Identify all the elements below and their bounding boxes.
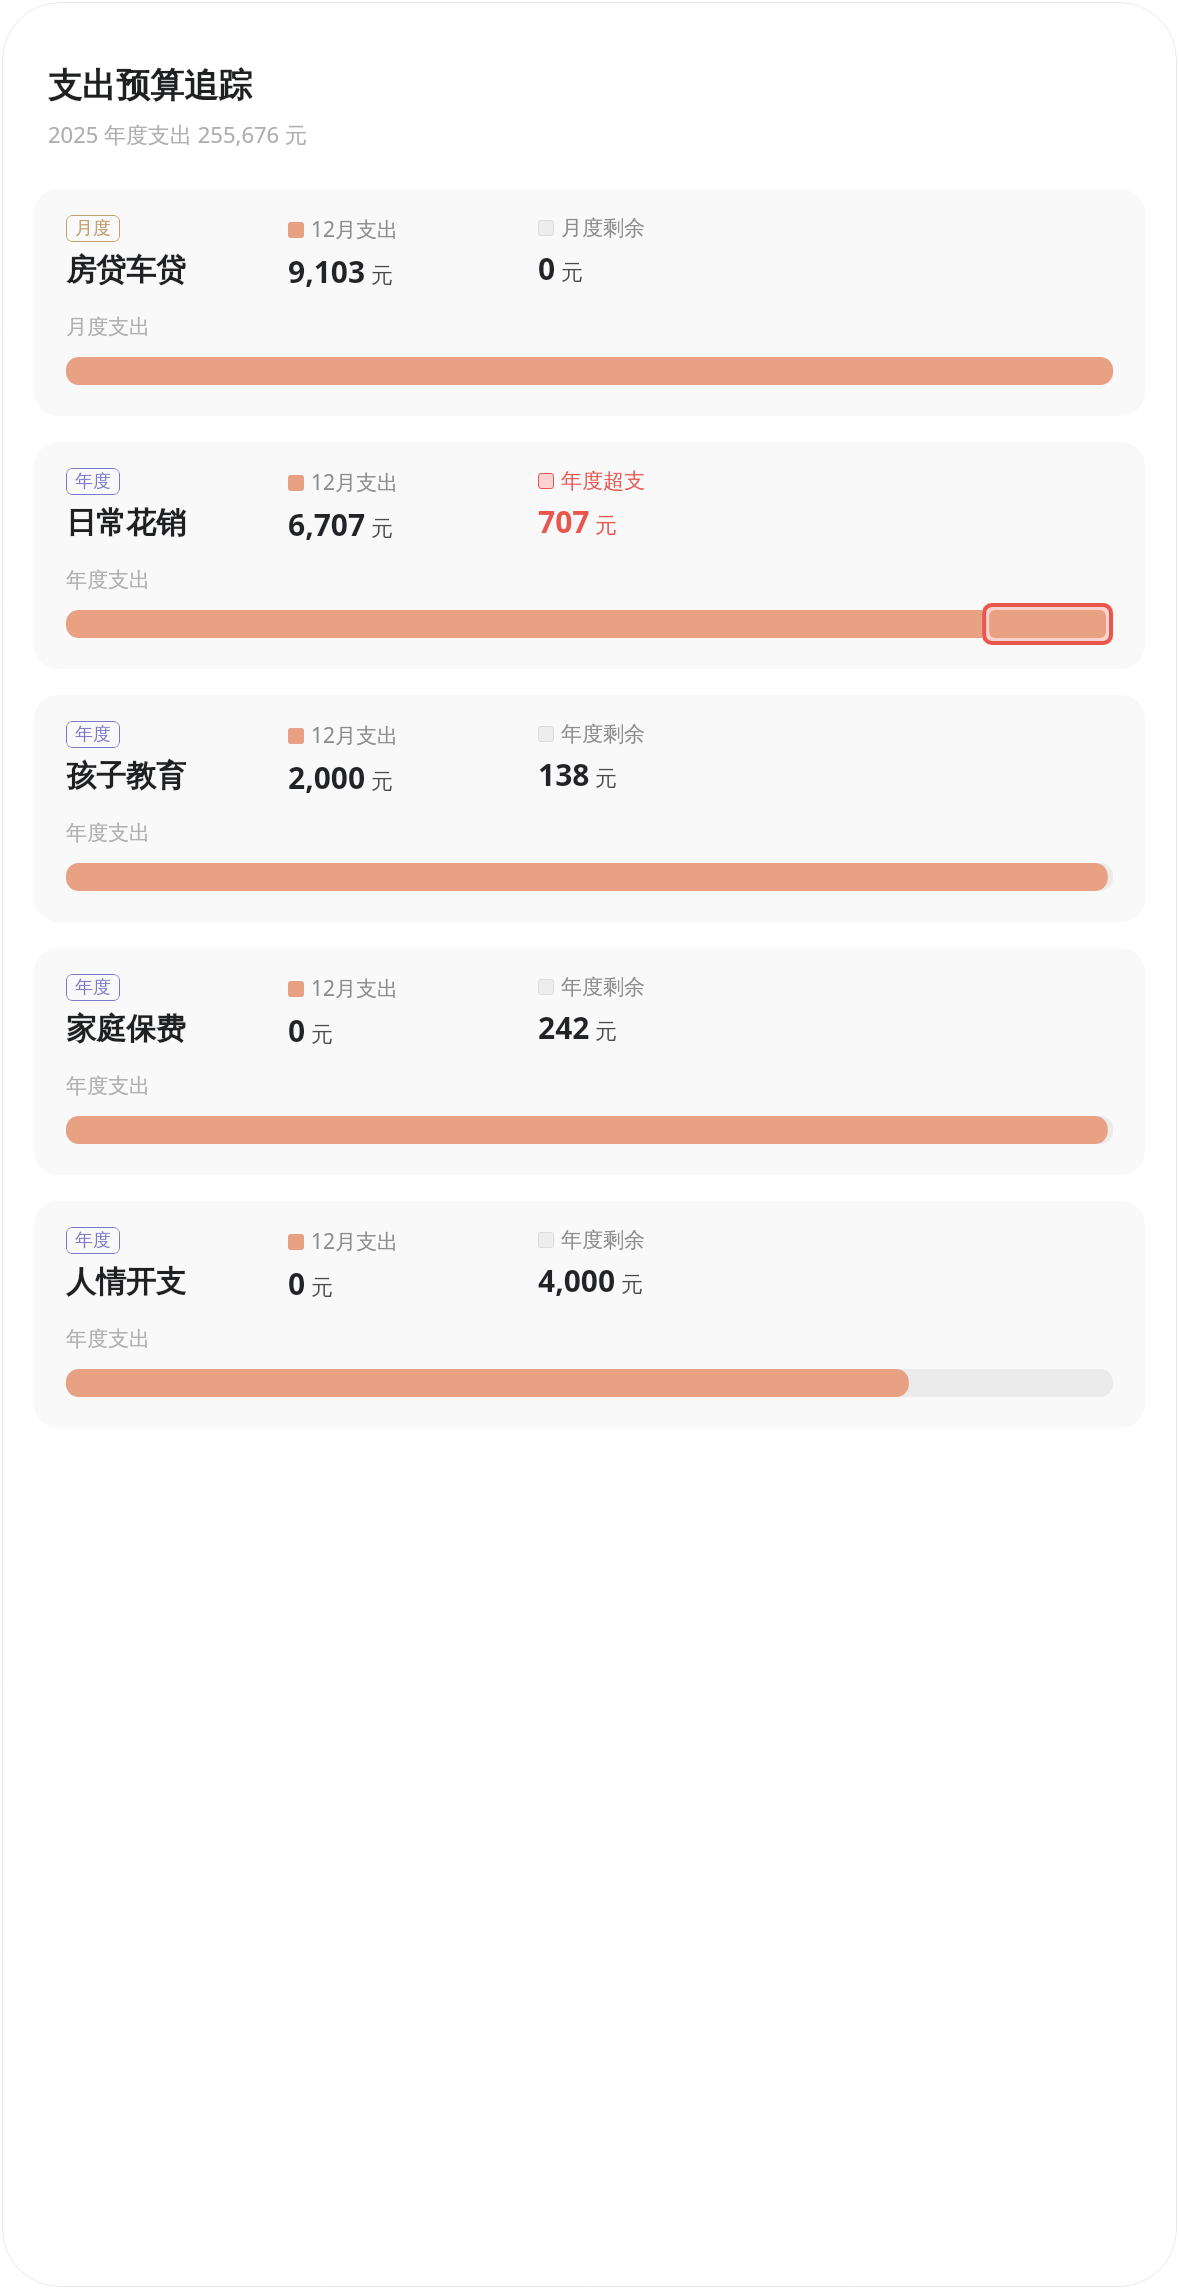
staticText: 2025 年度支出 255,676 元	[48, 119, 307, 149]
staticText: 元	[371, 515, 393, 543]
staticText: 年度支出	[66, 820, 150, 846]
staticText: 年度剩余	[561, 721, 645, 747]
staticText: 月度	[75, 217, 111, 240]
staticText: 元	[371, 768, 393, 796]
staticText: 年度支出	[66, 567, 150, 593]
staticText: 年度支出	[66, 1326, 150, 1352]
staticText: 138	[538, 754, 590, 795]
staticText: 元	[595, 512, 617, 540]
staticText: 0	[288, 1263, 306, 1304]
button[interactable]: 年度	[34, 1201, 1145, 1428]
staticText: 0	[288, 1010, 306, 1051]
button[interactable]: 年度	[34, 695, 1145, 922]
staticText: 元	[595, 1018, 617, 1046]
staticText: 家庭保费	[66, 1010, 186, 1048]
staticText: 2,000	[288, 757, 366, 798]
staticText: 元	[561, 259, 583, 287]
staticText: 707	[538, 501, 590, 542]
staticText: 12月支出	[311, 468, 399, 497]
staticText: 年度超支	[561, 468, 645, 494]
staticText: 元	[371, 262, 393, 290]
staticText: 年度	[75, 1229, 111, 1252]
button[interactable]: 年度	[34, 442, 1145, 669]
staticText: 月度支出	[66, 314, 150, 340]
staticText: 年度	[75, 470, 111, 493]
staticText: 年度剩余	[561, 974, 645, 1000]
staticText: 孩子教育	[66, 757, 186, 795]
staticText: 12月支出	[311, 1227, 399, 1256]
staticText: 年度剩余	[561, 1227, 645, 1253]
staticText: 元	[311, 1021, 333, 1049]
staticText: 12月支出	[311, 721, 399, 750]
staticText: 支出预算追踪	[48, 64, 252, 107]
button[interactable]: 月度	[34, 189, 1145, 416]
staticText: 4,000	[538, 1260, 616, 1301]
staticText: 元	[311, 1274, 333, 1302]
staticText: 月度剩余	[561, 215, 645, 241]
staticText: 年度	[75, 723, 111, 746]
staticText: 日常花销	[66, 504, 186, 542]
staticText: 12月支出	[311, 215, 399, 244]
staticText: 房贷车贷	[66, 251, 186, 289]
button[interactable]: 年度	[34, 948, 1145, 1175]
staticText: 6,707	[288, 504, 366, 545]
staticText: 242	[538, 1007, 590, 1048]
staticText: 元	[621, 1271, 643, 1299]
staticText: 9,103	[288, 251, 366, 292]
staticText: 人情开支	[66, 1263, 186, 1301]
staticText: 年度	[75, 976, 111, 999]
staticText: 12月支出	[311, 974, 399, 1003]
staticText: 元	[595, 765, 617, 793]
staticText: 0	[538, 248, 556, 289]
staticText: 年度支出	[66, 1073, 150, 1099]
